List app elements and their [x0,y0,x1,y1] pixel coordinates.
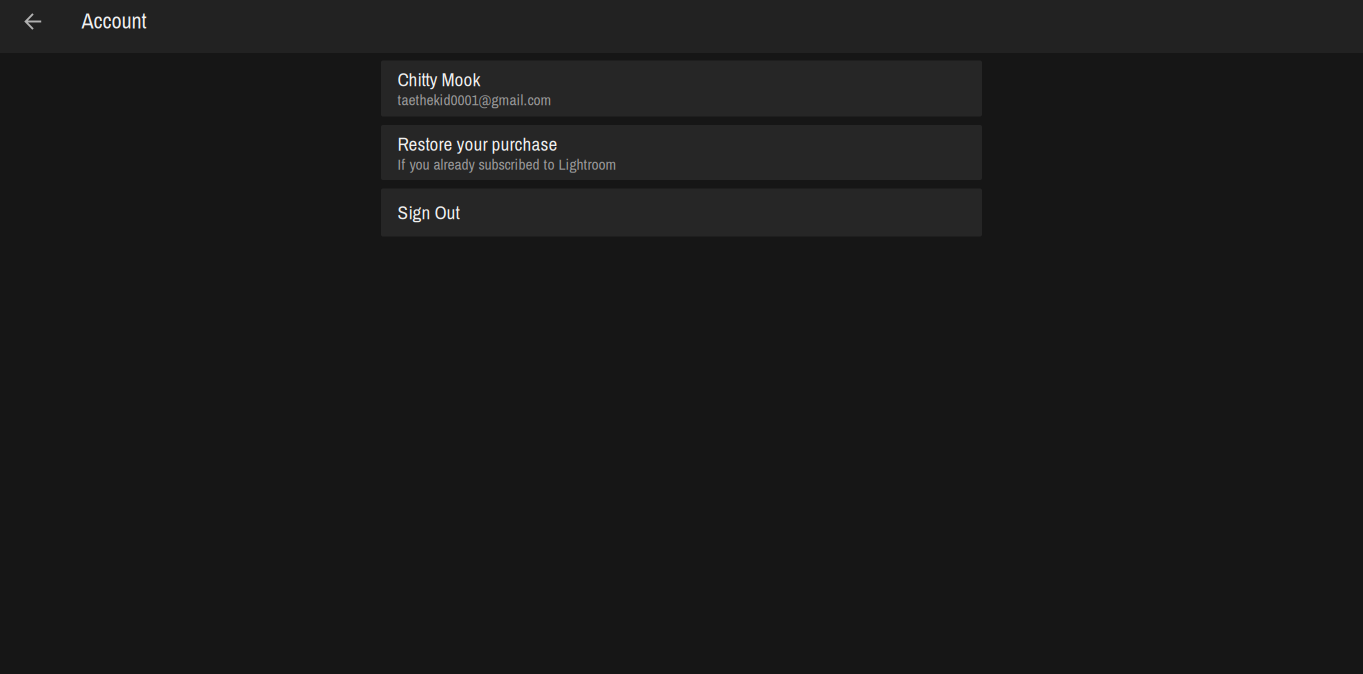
staticText: Account [82,6,147,35]
staticText: Sign Out [397,199,459,225]
button[interactable]: Sign Out [381,188,982,236]
staticText: Chitty Mook [397,66,480,92]
staticText: Restore your purchase [397,131,557,157]
staticText: taethekid0001@gmail.com [397,89,551,110]
button[interactable]: Chitty Mook [381,60,982,116]
staticText: If you already subscribed to Lightroom [397,154,616,175]
button[interactable]: Restore your purchase [381,125,982,180]
button[interactable]: Back [0,0,56,53]
